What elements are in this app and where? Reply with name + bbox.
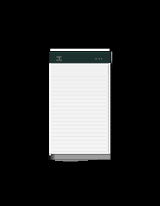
button[interactable]: Notepad: [44, 44, 116, 166]
